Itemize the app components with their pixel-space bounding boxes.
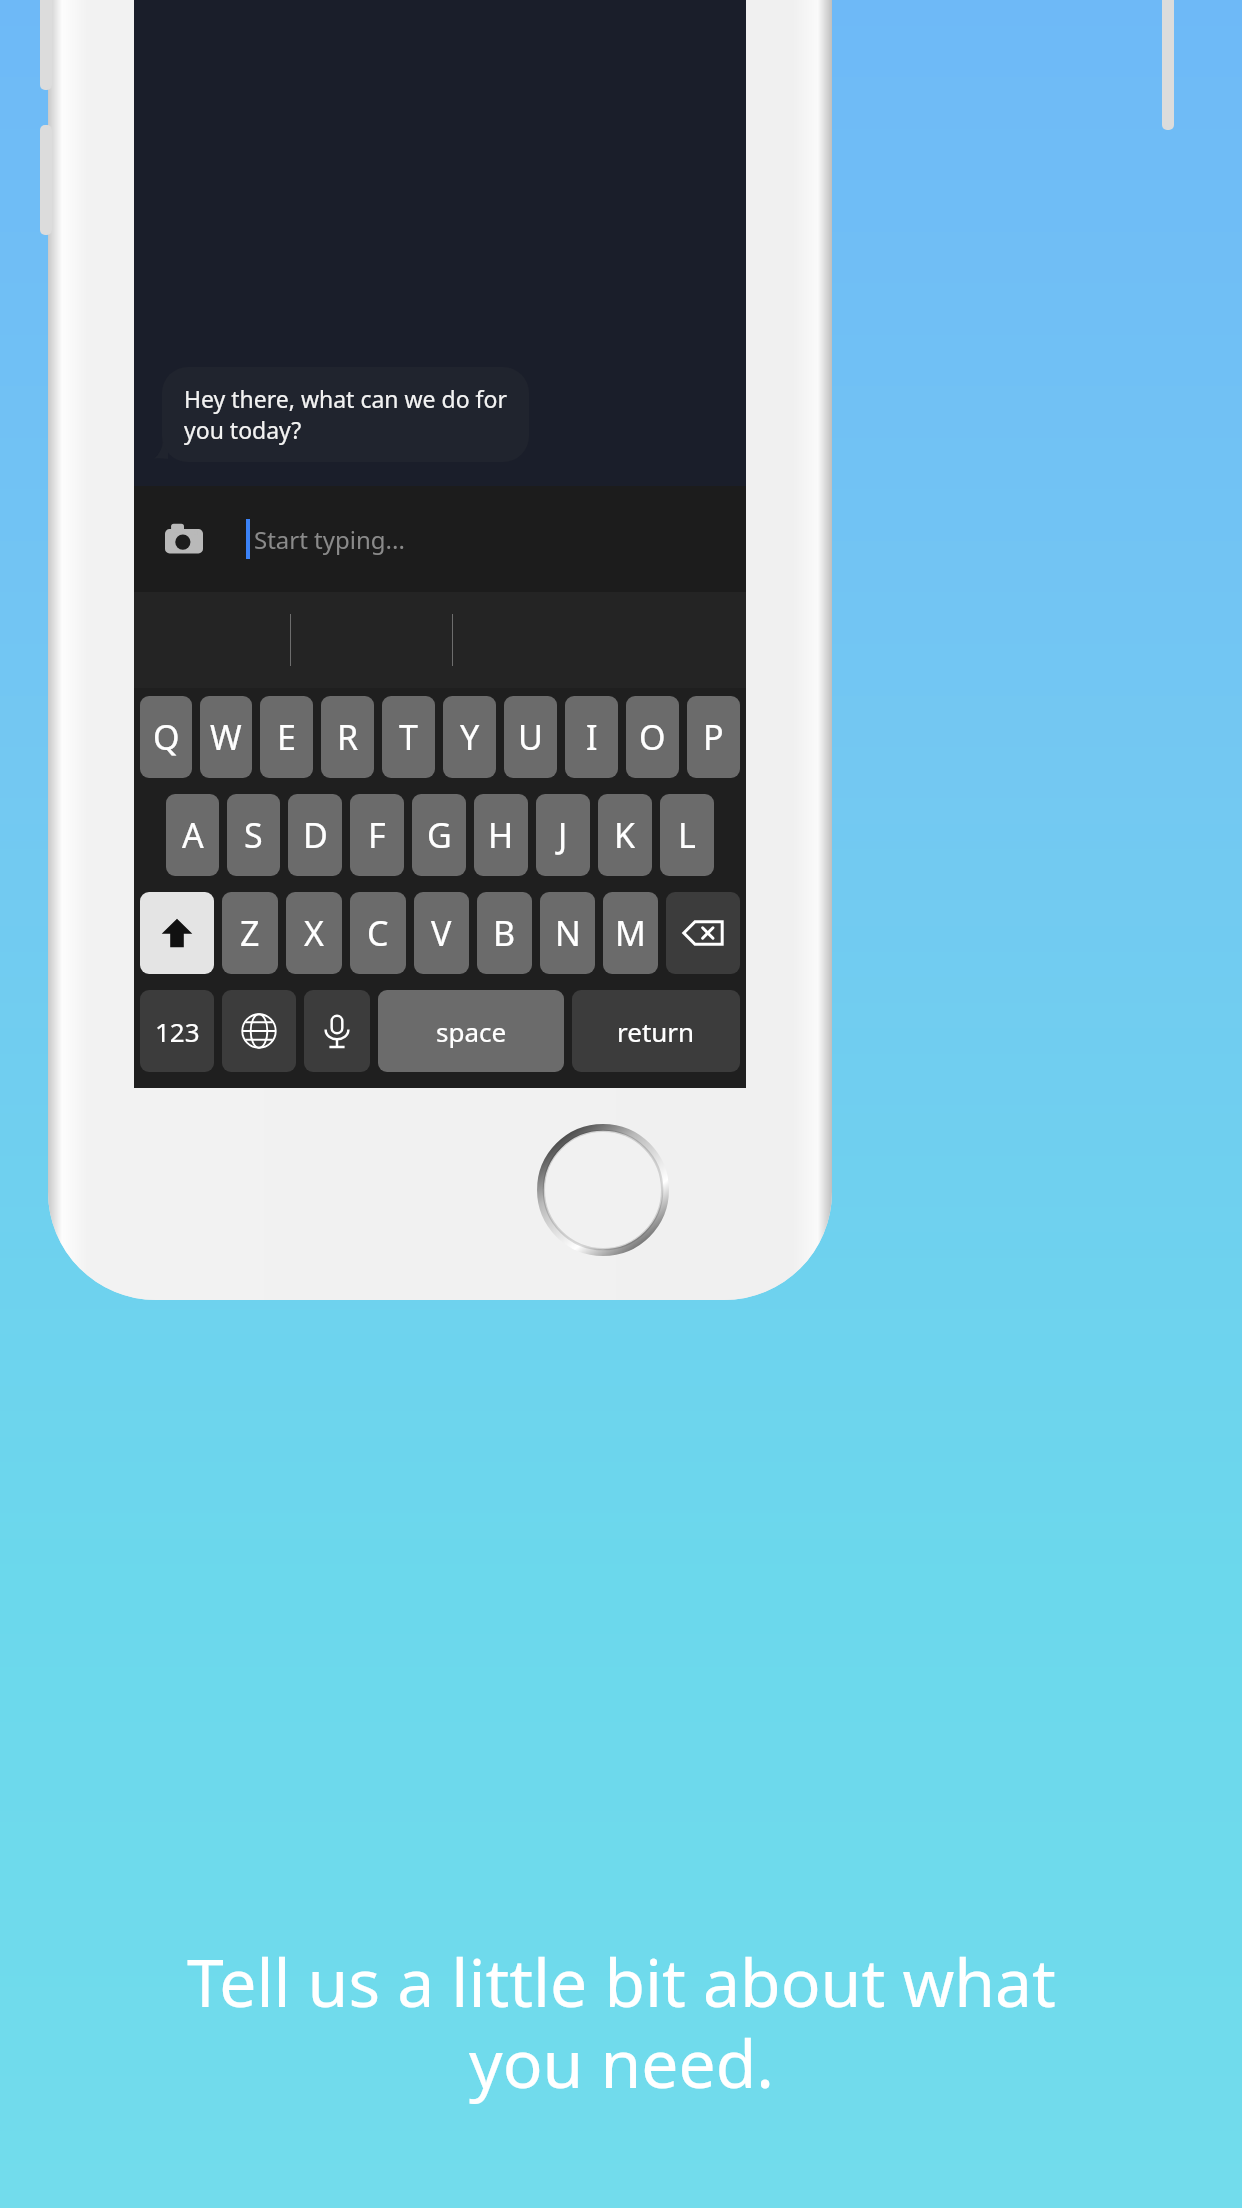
- staticText: B: [493, 910, 516, 956]
- button[interactable]: Camera: [134, 486, 746, 592]
- button[interactable]: D: [288, 794, 342, 876]
- staticText: S: [244, 812, 263, 858]
- button[interactable]: L: [660, 794, 714, 876]
- button[interactable]: Change language: [222, 990, 296, 1072]
- staticText: G: [427, 812, 452, 858]
- button[interactable]: T: [382, 696, 435, 778]
- button[interactable]: 123: [140, 990, 214, 1072]
- button[interactable]: return: [572, 990, 740, 1072]
- staticText: P: [703, 714, 724, 760]
- staticText: K: [614, 812, 636, 858]
- button[interactable]: Voice input: [304, 990, 370, 1072]
- staticText: M: [615, 910, 646, 956]
- button[interactable]: M: [603, 892, 658, 974]
- button[interactable]: J: [536, 794, 590, 876]
- staticText: L: [678, 812, 696, 858]
- staticText: Hey there, what can we do for you today?: [184, 383, 507, 446]
- staticText: Start typing...: [254, 523, 405, 556]
- staticText: O: [639, 714, 666, 760]
- button[interactable]: R: [321, 696, 374, 778]
- button[interactable]: Z: [222, 892, 278, 974]
- button[interactable]: B: [477, 892, 532, 974]
- staticText: Z: [240, 910, 260, 956]
- staticText: F: [368, 812, 386, 858]
- button[interactable]: S: [227, 794, 280, 876]
- button[interactable]: X: [286, 892, 342, 974]
- button[interactable]: space: [378, 990, 564, 1072]
- staticText: A: [182, 812, 204, 858]
- staticText: X: [304, 910, 324, 956]
- staticText: H: [488, 812, 514, 858]
- button[interactable]: V: [414, 892, 469, 974]
- button[interactable]: Q: [140, 696, 192, 778]
- staticText: J: [558, 812, 568, 858]
- staticText: T: [399, 714, 418, 760]
- button[interactable]: I: [565, 696, 618, 778]
- button[interactable]: G: [412, 794, 466, 876]
- staticText: Y: [460, 714, 480, 760]
- staticText: E: [277, 714, 296, 760]
- staticText: C: [367, 910, 389, 956]
- staticText: return: [617, 1014, 695, 1049]
- button[interactable]: N: [540, 892, 595, 974]
- staticText: N: [555, 910, 581, 956]
- button[interactable]: C: [350, 892, 406, 974]
- button[interactable]: Shift: [140, 892, 214, 974]
- staticText: V: [431, 910, 452, 956]
- staticText: Q: [153, 714, 180, 760]
- staticText: W: [210, 714, 242, 760]
- button[interactable]: U: [504, 696, 557, 778]
- staticText: U: [518, 714, 543, 760]
- button[interactable]: Hey there, what can we do for you today?: [162, 367, 529, 462]
- staticText: 123: [155, 1014, 200, 1049]
- staticText: space: [436, 1014, 507, 1049]
- button[interactable]: E: [260, 696, 313, 778]
- button[interactable]: F: [350, 794, 404, 876]
- staticText: R: [337, 714, 359, 760]
- button[interactable]: A: [166, 794, 219, 876]
- button[interactable]: O: [626, 696, 679, 778]
- button[interactable]: Camera: [162, 517, 206, 561]
- button[interactable]: H: [474, 794, 528, 876]
- staticText: D: [303, 812, 328, 858]
- button[interactable]: Y: [443, 696, 496, 778]
- button[interactable]: P: [687, 696, 740, 778]
- staticText: Tell us a little bit about what you need…: [187, 1936, 1056, 2108]
- button[interactable]: K: [598, 794, 652, 876]
- staticText: I: [586, 714, 598, 760]
- button[interactable]: W: [200, 696, 252, 778]
- button[interactable]: Backspace: [666, 892, 740, 974]
